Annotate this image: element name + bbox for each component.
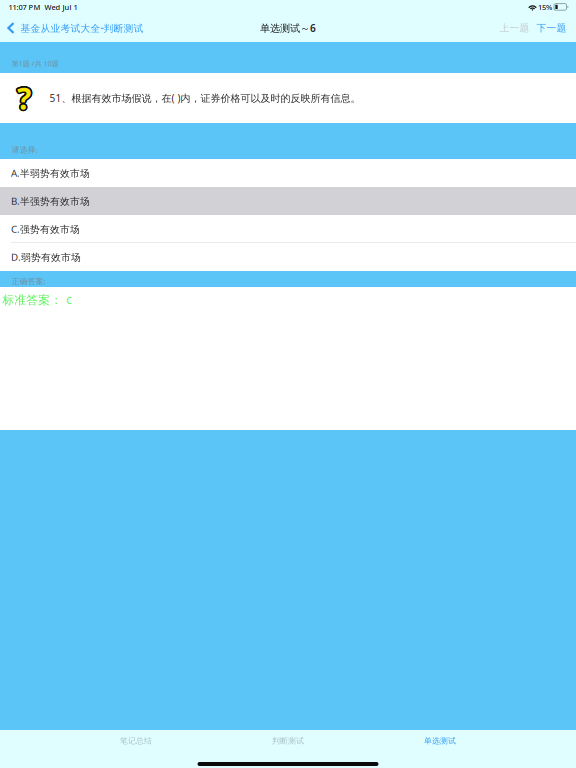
staticText: ? bbox=[18, 79, 32, 120]
staticText: B.半强势有效市场 bbox=[11, 194, 90, 208]
button[interactable]: D.弱势有效市场 bbox=[0, 243, 576, 271]
button[interactable]: A.半弱势有效市场 bbox=[0, 159, 576, 187]
staticText: Wed Jul 1 bbox=[41, 2, 78, 12]
staticText: 单选测试～6 bbox=[260, 21, 316, 35]
staticText: ? bbox=[18, 76, 32, 117]
staticText: 51、根据有效市场假说，在( )内，证券价格可以及时的反映所有信息。 bbox=[49, 91, 360, 105]
button[interactable]: 下一题 bbox=[533, 16, 576, 40]
staticText: 上一题 bbox=[499, 22, 529, 34]
staticText: ? bbox=[18, 79, 32, 119]
staticText: ? bbox=[18, 77, 32, 118]
staticText: 请选择: bbox=[11, 144, 37, 155]
staticText: 11:07 PM bbox=[9, 2, 41, 12]
staticText: 笔记总结 bbox=[120, 736, 152, 746]
staticText: ? bbox=[16, 79, 30, 119]
staticText: ? bbox=[15, 78, 29, 118]
staticText: 判断测试 bbox=[272, 736, 304, 746]
staticText: ? bbox=[18, 78, 32, 119]
staticText: ? bbox=[18, 78, 32, 118]
staticText: ? bbox=[16, 76, 30, 117]
staticText: A.半弱势有效市场 bbox=[11, 166, 90, 180]
staticText: ? bbox=[17, 76, 31, 117]
staticText: 基金从业考试大全-判断测试 bbox=[21, 21, 144, 35]
button[interactable]: 单选测试 bbox=[364, 728, 516, 754]
staticText: ? bbox=[17, 79, 31, 120]
staticText: ? bbox=[16, 79, 30, 120]
button[interactable]: 判断测试 bbox=[212, 728, 364, 754]
button[interactable]: 笔记总结 bbox=[60, 728, 212, 754]
staticText: 15% bbox=[536, 2, 552, 12]
button[interactable]: B.半强势有效市场 bbox=[0, 187, 576, 215]
staticText: ? bbox=[17, 78, 31, 118]
button[interactable]: 上一题 bbox=[491, 16, 533, 40]
staticText: ? bbox=[16, 78, 30, 119]
staticText: 单选测试 bbox=[424, 736, 456, 746]
staticText: 下一题 bbox=[536, 22, 566, 34]
button[interactable]: C.强势有效市场 bbox=[0, 215, 576, 243]
staticText: 正确答案: bbox=[11, 276, 45, 286]
staticText: ? bbox=[16, 77, 30, 118]
staticText: C.强势有效市场 bbox=[11, 222, 80, 236]
staticText: ? bbox=[18, 76, 32, 117]
staticText: 标准答案： c bbox=[2, 291, 72, 308]
staticText: 第1题 /共 10题 bbox=[11, 59, 58, 68]
staticText: ? bbox=[16, 76, 30, 117]
staticText: D.弱势有效市场 bbox=[11, 250, 81, 264]
button[interactable]: 基金从业考试大全-判断测试 bbox=[0, 16, 152, 40]
